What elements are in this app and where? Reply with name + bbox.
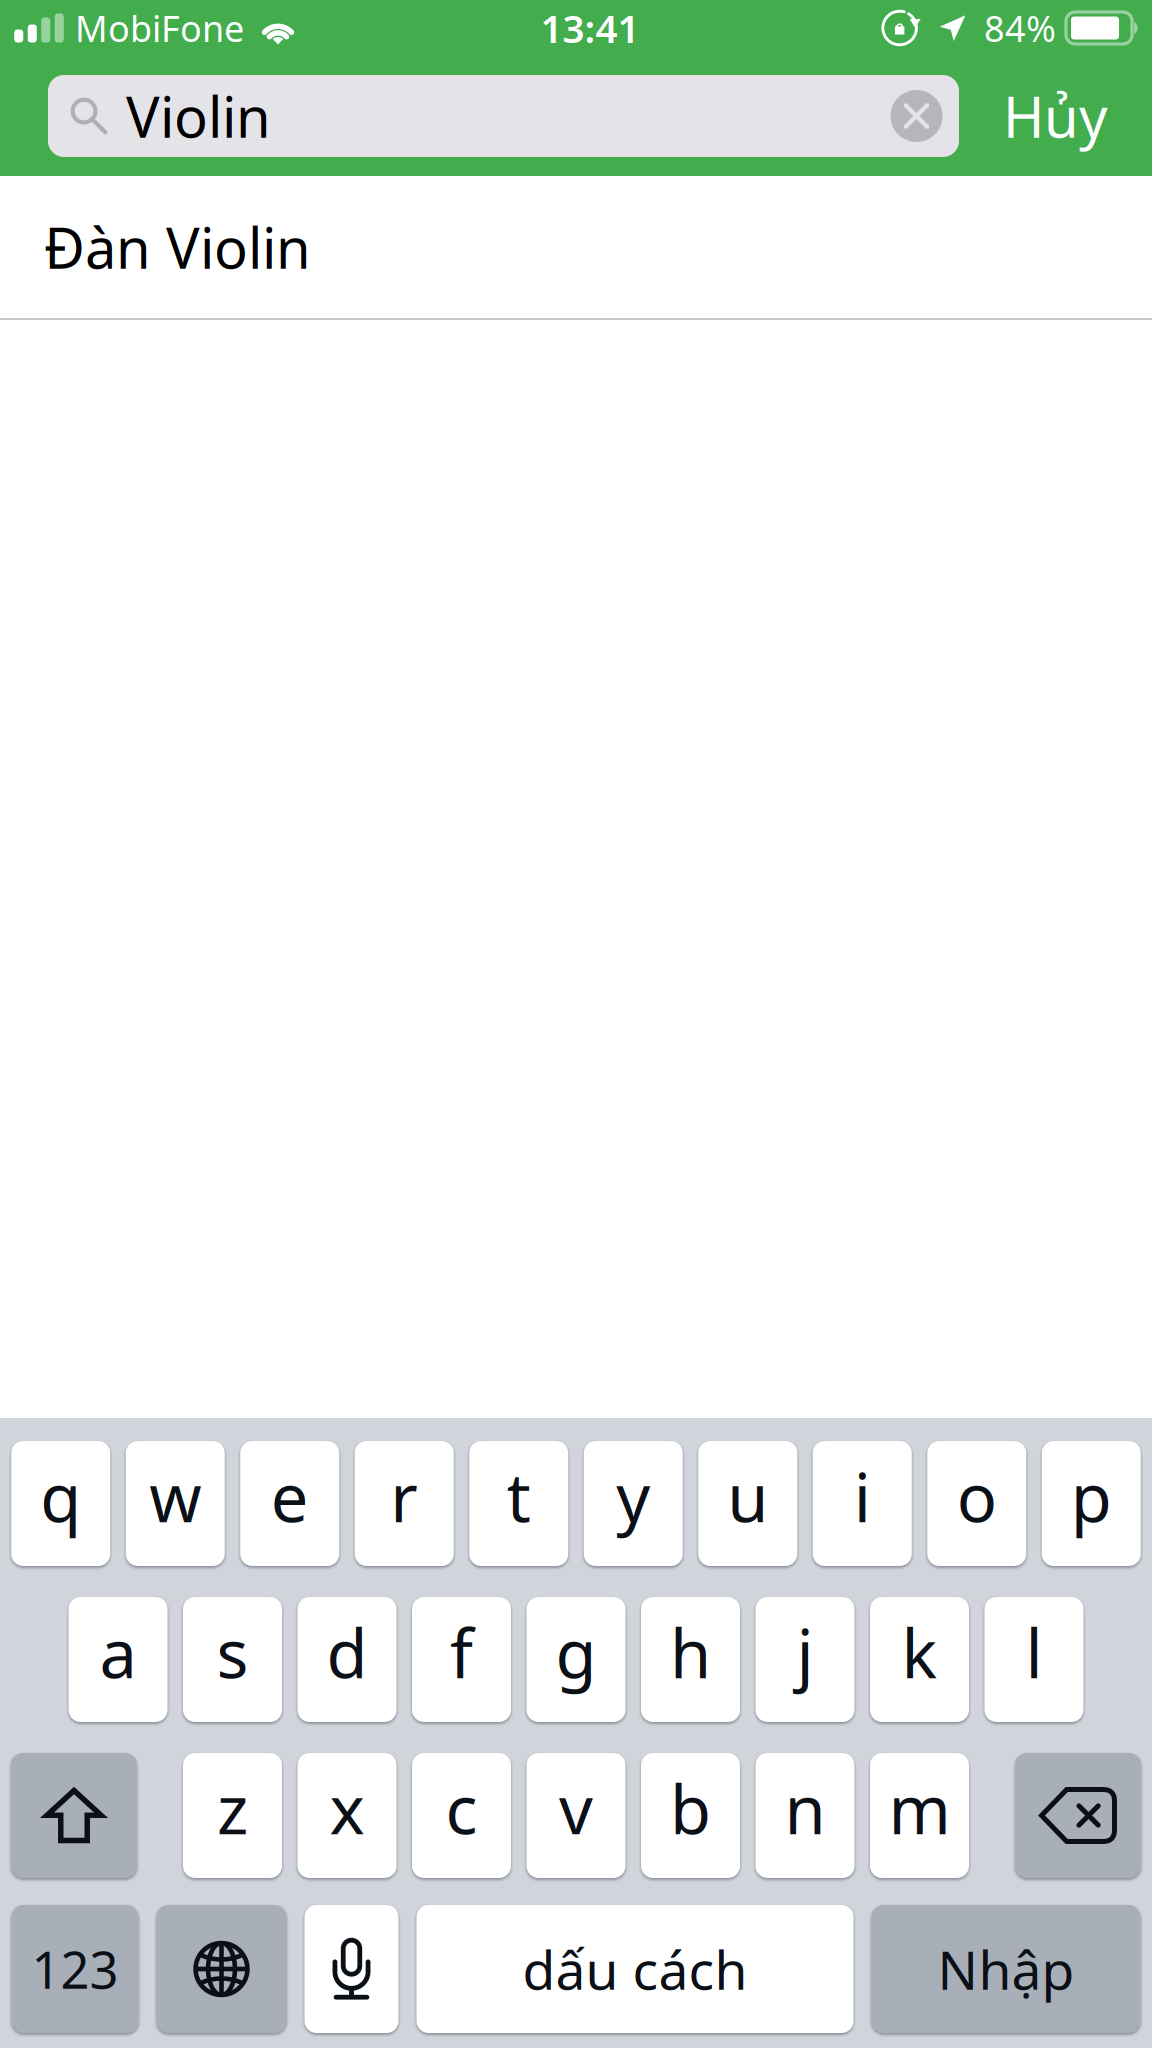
staticText: r <box>390 1452 418 1541</box>
button[interactable]: h <box>641 1597 740 1722</box>
button[interactable]: x <box>297 1753 396 1878</box>
staticText: b <box>670 1764 711 1853</box>
button[interactable]: e <box>240 1441 339 1566</box>
staticText: 84% <box>984 4 1056 52</box>
button[interactable]: w <box>126 1441 225 1566</box>
button[interactable]: t <box>469 1441 568 1566</box>
staticText: d <box>326 1608 367 1697</box>
staticText: z <box>217 1764 248 1853</box>
button[interactable]: b <box>641 1753 740 1878</box>
button[interactable]: o <box>927 1441 1026 1566</box>
button[interactable]: n <box>755 1753 854 1878</box>
staticText: n <box>784 1764 825 1853</box>
button[interactable]: Đàn Violin <box>0 176 1152 318</box>
staticText: y <box>616 1452 650 1541</box>
staticText: e <box>271 1452 309 1541</box>
staticText: v <box>559 1764 593 1853</box>
button[interactable]: j <box>755 1597 854 1722</box>
button[interactable]: Nhập <box>871 1905 1140 2033</box>
button[interactable]: v <box>526 1753 625 1878</box>
button[interactable]: p <box>1042 1441 1141 1566</box>
button[interactable]: c <box>412 1753 511 1878</box>
button[interactable]: Dictation <box>304 1905 398 2033</box>
button[interactable]: y <box>584 1441 683 1566</box>
button[interactable]: z <box>183 1753 282 1878</box>
button[interactable]: i <box>813 1441 912 1566</box>
button[interactable]: m <box>870 1753 969 1878</box>
staticText: 13:41 <box>540 2 639 54</box>
button[interactable]: k <box>870 1597 969 1722</box>
staticText: l <box>1025 1608 1042 1697</box>
staticText: c <box>445 1764 477 1853</box>
button[interactable]: u <box>698 1441 797 1566</box>
button[interactable]: d <box>297 1597 396 1722</box>
staticText: o <box>957 1452 997 1541</box>
button[interactable]: r <box>355 1441 454 1566</box>
button[interactable]: Hủy <box>959 75 1152 157</box>
staticText: f <box>450 1608 473 1697</box>
staticText: Hủy <box>1003 79 1108 153</box>
staticText: Đàn Violin <box>44 210 311 284</box>
button[interactable]: Next keyboard <box>156 1905 286 2033</box>
button[interactable]: f <box>412 1597 511 1722</box>
staticText: i <box>854 1452 871 1541</box>
button[interactable]: Shift <box>11 1753 137 1878</box>
button[interactable]: q <box>11 1441 110 1566</box>
staticText: k <box>901 1608 937 1697</box>
staticText: h <box>670 1608 711 1697</box>
button[interactable]: dấu cách <box>416 1905 853 2033</box>
button[interactable]: Clear text <box>880 75 953 157</box>
staticText: g <box>555 1608 596 1697</box>
staticText: q <box>40 1452 81 1541</box>
staticText: 123 <box>31 1935 118 2003</box>
staticText: dấu cách <box>522 1934 747 2004</box>
staticText: a <box>99 1608 136 1697</box>
button[interactable]: g <box>526 1597 625 1722</box>
staticText: Violin <box>126 79 271 153</box>
staticText: t <box>507 1452 531 1541</box>
staticText: x <box>329 1764 364 1853</box>
button[interactable]: 123 <box>11 1905 138 2033</box>
button[interactable]: Delete <box>1015 1753 1141 1878</box>
staticText: Nhập <box>937 1934 1074 2004</box>
button[interactable]: a <box>68 1597 167 1722</box>
button[interactable]: s <box>183 1597 282 1722</box>
staticText: w <box>149 1452 201 1541</box>
staticText: MobiFone <box>75 4 244 52</box>
button[interactable]: l <box>984 1597 1083 1722</box>
staticText: p <box>1071 1452 1112 1541</box>
staticText: s <box>216 1608 248 1697</box>
staticText: m <box>888 1764 950 1853</box>
staticText: u <box>727 1452 768 1541</box>
staticText: j <box>796 1608 813 1697</box>
